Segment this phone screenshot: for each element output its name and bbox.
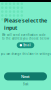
staticText: you can change this later in settings: [0, 52, 50, 56]
button[interactable]: Back: [23, 82, 28, 86]
staticText: Email: [23, 43, 31, 47]
staticText: Back: [23, 82, 28, 86]
staticText: We will send a verification code to the …: [2, 33, 49, 40]
button[interactable]: Next: [0, 72, 51, 80]
button[interactable]: Email: [17, 42, 34, 48]
staticText: Please select the input: [4, 17, 47, 31]
staticText: Next: [21, 74, 30, 79]
